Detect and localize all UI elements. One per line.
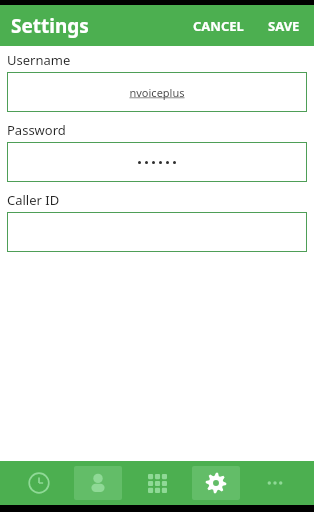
button[interactable]: More options: [251, 466, 299, 500]
staticText: Password: [7, 121, 66, 139]
staticText: Caller ID: [7, 191, 60, 209]
staticText: nvoiceplus: [13, 85, 301, 100]
staticText: SAVE: [268, 17, 300, 35]
staticText: Username: [7, 51, 71, 69]
button[interactable]: Recents: [15, 466, 63, 500]
button[interactable]: nvoiceplus: [7, 72, 307, 112]
button[interactable]: Dialpad: [133, 466, 181, 500]
button[interactable]: Contacts: [74, 466, 122, 500]
button[interactable]: [7, 142, 307, 182]
button[interactable]: [7, 212, 307, 252]
staticText: CANCEL: [193, 17, 244, 35]
button[interactable]: CANCEL: [187, 10, 250, 42]
button[interactable]: SAVE: [262, 10, 306, 42]
button[interactable]: Settings: [192, 466, 240, 500]
staticText: Settings: [11, 13, 89, 39]
